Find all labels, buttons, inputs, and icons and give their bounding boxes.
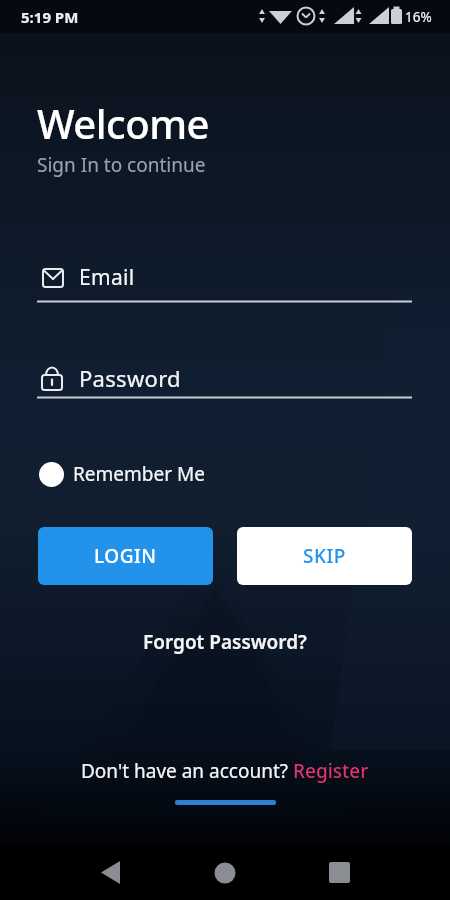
button[interactable]: LOGIN — [38, 527, 213, 585]
button[interactable]: Password — [37, 358, 412, 400]
button[interactable]: SKIP — [237, 527, 412, 585]
button[interactable]: Email — [37, 258, 412, 304]
staticText: Don't have an account? — [81, 758, 293, 784]
staticText: Welcome — [37, 96, 210, 140]
staticText: 16% — [405, 8, 432, 26]
staticText: LOGIN — [94, 543, 157, 569]
staticText: Password — [79, 363, 181, 393]
button[interactable]: Forgot Password? — [143, 629, 307, 655]
button[interactable] — [206, 861, 244, 885]
staticText: 5:19 PM — [21, 7, 79, 27]
staticText: Forgot Password? — [143, 629, 307, 655]
staticText: Register — [293, 758, 369, 784]
button[interactable] — [320, 861, 358, 885]
button[interactable]: Register — [293, 758, 369, 784]
staticText: SKIP — [303, 543, 346, 569]
button[interactable] — [92, 861, 130, 885]
staticText: Remember Me — [73, 461, 205, 487]
staticText: Email — [79, 263, 135, 292]
staticText: Sign In to continue — [37, 152, 206, 178]
button[interactable]: Remember Me — [39, 461, 205, 487]
